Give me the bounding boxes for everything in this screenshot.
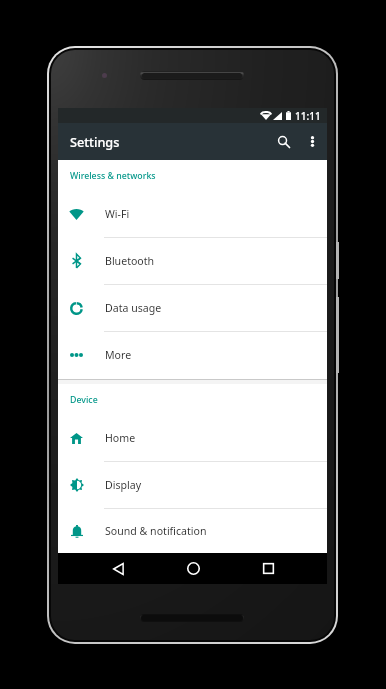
staticText: Settings <box>70 133 120 150</box>
button[interactable]: Home <box>173 553 213 584</box>
button[interactable]: Search <box>270 123 298 160</box>
button[interactable]: Home <box>58 415 327 461</box>
staticText: Display <box>105 478 142 492</box>
staticText: 11:11 <box>295 109 321 123</box>
button[interactable]: Wi-Fi <box>58 191 327 237</box>
button[interactable]: Data usage <box>58 285 327 331</box>
button[interactable]: More <box>58 332 327 378</box>
button[interactable]: Display <box>58 462 327 508</box>
staticText: Device <box>70 394 98 406</box>
button[interactable]: More options <box>298 123 326 160</box>
button[interactable]: Bluetooth <box>58 238 327 284</box>
staticText: Home <box>105 431 136 445</box>
staticText: More <box>105 348 132 362</box>
staticText: Data usage <box>105 301 162 315</box>
staticText: Wireless & networks <box>70 170 156 182</box>
button[interactable]: Back <box>98 553 138 584</box>
staticText: Wi-Fi <box>105 207 130 221</box>
button[interactable]: Sound & notification <box>58 509 327 553</box>
staticText: Sound & notification <box>105 524 207 538</box>
staticText: Bluetooth <box>105 254 155 268</box>
button[interactable]: Recent apps <box>248 553 288 584</box>
